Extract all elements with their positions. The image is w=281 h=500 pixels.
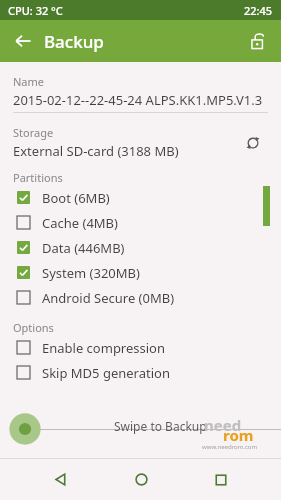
button[interactable]: Back	[8, 26, 38, 56]
staticText: Data (446MB)	[42, 239, 125, 257]
button[interactable]: Swipe to Backup	[0, 400, 281, 458]
button[interactable]: Refresh storage	[238, 128, 268, 158]
button[interactable]: Skip MD5 generation	[13, 360, 268, 385]
button[interactable]: Boot (6MB)	[13, 185, 268, 210]
staticText: www.needrom.com	[202, 443, 258, 451]
staticText: Partitions	[13, 170, 63, 185]
button[interactable]: Enable compression	[13, 335, 268, 360]
staticText: External SD-card (3188 MB)	[13, 142, 179, 160]
staticText: Swipe to Backup	[114, 418, 207, 434]
button[interactable]: Unlock	[241, 25, 273, 57]
button[interactable]: Android Secure (0MB)	[13, 285, 268, 310]
staticText: 22:45	[244, 3, 273, 18]
staticText: System (320MB)	[42, 264, 140, 282]
button[interactable]: Cache (4MB)	[13, 210, 268, 235]
button[interactable]: System (320MB)	[13, 260, 268, 285]
button[interactable]: Recent apps	[200, 459, 242, 500]
staticText: Skip MD5 generation	[42, 364, 170, 382]
staticText: Enable compression	[42, 339, 166, 357]
staticText: CPU: 32 °C	[8, 3, 63, 18]
button[interactable]: Data (446MB)	[13, 235, 268, 260]
button[interactable]: Back	[39, 459, 81, 500]
staticText: Storage	[13, 125, 54, 140]
staticText: rom	[223, 425, 254, 445]
staticText: Backup	[44, 30, 104, 53]
staticText: Boot (6MB)	[42, 189, 110, 207]
staticText: Name	[13, 74, 45, 89]
staticText: need	[204, 415, 242, 435]
staticText: Android Secure (0MB)	[42, 289, 175, 307]
button[interactable]: Home	[120, 459, 162, 500]
staticText: 2015-02-12--22-45-24 ALPS.KK1.MP5.V1.3	[13, 91, 263, 109]
staticText: Options	[13, 320, 54, 335]
staticText: Cache (4MB)	[42, 214, 118, 232]
